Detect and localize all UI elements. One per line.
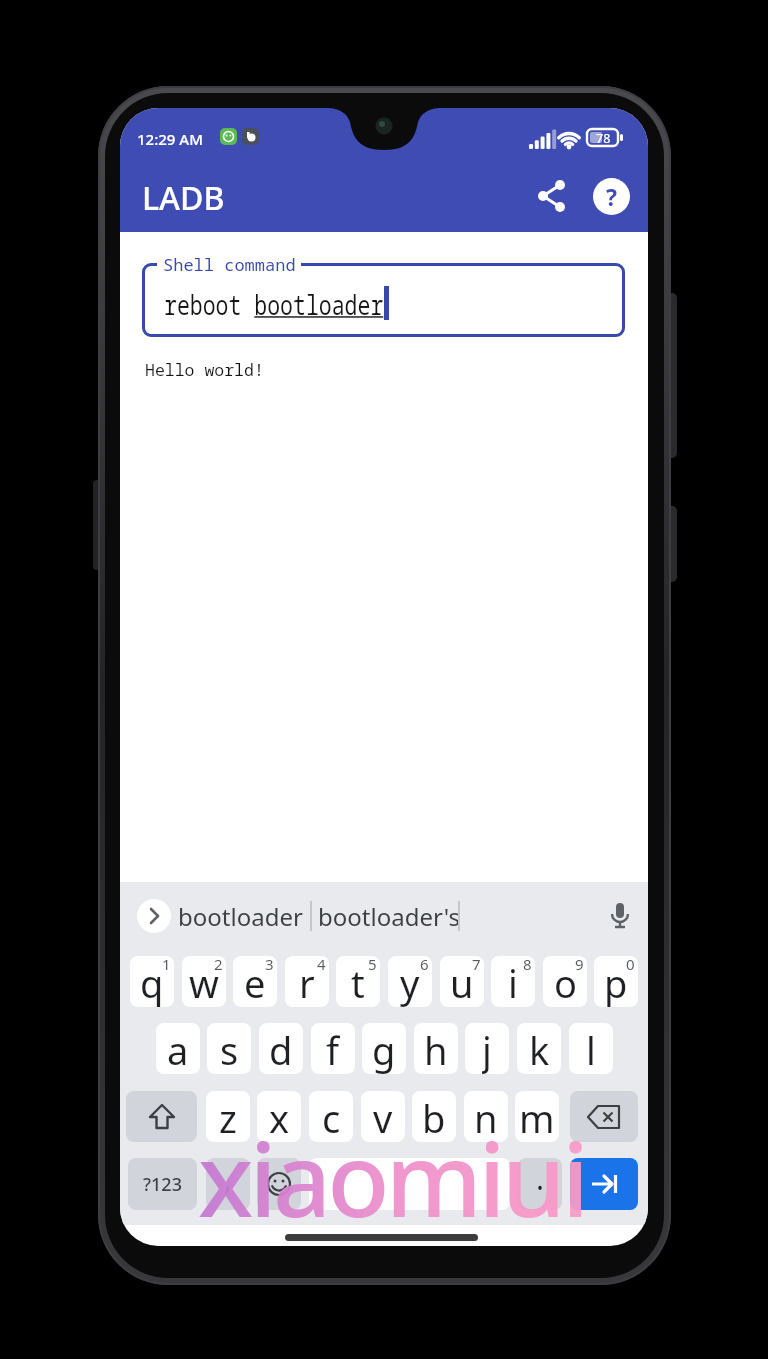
staticText: s (220, 1024, 239, 1074)
button[interactable]: b (412, 1091, 456, 1142)
staticText: m (519, 1092, 555, 1142)
staticText: 0 (626, 956, 635, 974)
button[interactable]: n (464, 1091, 508, 1142)
button[interactable] (532, 176, 572, 216)
staticText: a (167, 1024, 189, 1074)
staticText: i (508, 957, 518, 1007)
staticText: 3 (265, 956, 274, 974)
staticText: Shell command (163, 253, 296, 276)
staticText: ? (606, 181, 617, 212)
staticText: 9 (575, 956, 584, 974)
staticText: 78 (596, 130, 611, 147)
staticText: 6 (420, 956, 429, 974)
button[interactable]: x (257, 1091, 301, 1142)
staticText: z (219, 1092, 237, 1142)
staticText: 5 (368, 956, 377, 974)
staticText: u (450, 957, 474, 1007)
button[interactable]: v (361, 1091, 405, 1142)
staticText: 2 (214, 956, 223, 974)
button[interactable]: m (515, 1091, 559, 1142)
staticText: d (269, 1024, 293, 1074)
button[interactable]: u (440, 956, 484, 1007)
staticText: LADB (142, 176, 225, 220)
button[interactable]: p (594, 956, 638, 1007)
staticText: r (299, 957, 315, 1007)
button[interactable]: k (517, 1023, 561, 1074)
button[interactable] (257, 1158, 301, 1210)
staticText: 8 (523, 956, 532, 974)
button[interactable]: w (182, 956, 226, 1007)
staticText: 7 (472, 956, 481, 974)
button[interactable] (570, 1091, 638, 1142)
button[interactable]: y (388, 956, 432, 1007)
button[interactable]: i (491, 956, 535, 1007)
button[interactable] (602, 898, 638, 934)
button[interactable]: c (309, 1091, 353, 1142)
button[interactable]: j (465, 1023, 509, 1074)
staticText: v (373, 1092, 393, 1142)
button[interactable]: f (311, 1023, 355, 1074)
button[interactable]: t (336, 956, 380, 1007)
button[interactable]: e (233, 956, 277, 1007)
button[interactable]: s (207, 1023, 251, 1074)
button[interactable]: o (543, 956, 587, 1007)
button[interactable] (137, 899, 171, 933)
staticText: xiaomiui (198, 1108, 586, 1246)
staticText: c (322, 1092, 341, 1142)
staticText: l (586, 1024, 596, 1074)
staticText: w (189, 957, 219, 1007)
staticText: f (326, 1024, 340, 1074)
button[interactable]: ?123 (128, 1158, 197, 1210)
button[interactable]: ? (593, 178, 630, 215)
staticText: 1 (162, 956, 171, 974)
button[interactable]: z (206, 1091, 250, 1142)
button[interactable]: l (569, 1023, 613, 1074)
button[interactable]: a (156, 1023, 200, 1074)
button[interactable]: bootloader's (318, 900, 460, 932)
button[interactable]: bootloader (178, 900, 303, 932)
staticText: q (140, 957, 164, 1007)
button[interactable] (126, 1091, 197, 1142)
staticText: , (224, 1158, 233, 1199)
staticText: 12:29 AM (137, 129, 203, 149)
button[interactable]: q (130, 956, 174, 1007)
staticText: bootloader (178, 900, 303, 932)
staticText: ?123 (143, 1172, 182, 1197)
staticText: k (529, 1024, 550, 1074)
staticText: g (372, 1024, 396, 1074)
staticText: n (474, 1092, 498, 1142)
staticText: . (536, 1158, 545, 1199)
staticText: t (351, 957, 365, 1007)
staticText: j (482, 1024, 492, 1074)
button[interactable]: d (259, 1023, 303, 1074)
button[interactable] (309, 1158, 510, 1210)
staticText: 4 (317, 956, 326, 974)
staticText: e (244, 957, 266, 1007)
button[interactable]: g (362, 1023, 406, 1074)
button[interactable]: h (414, 1023, 458, 1074)
staticText: bootloader's (318, 900, 460, 932)
staticText: y (400, 957, 420, 1007)
staticText: reboot bootloader (164, 285, 384, 322)
staticText: x (269, 1092, 290, 1142)
button[interactable]: . (518, 1158, 562, 1210)
staticText: p (604, 957, 628, 1007)
staticText: Hello world! (145, 358, 264, 380)
staticText: b (422, 1092, 446, 1142)
button[interactable] (570, 1158, 638, 1210)
staticText: h (424, 1024, 448, 1074)
button[interactable]: , (206, 1158, 250, 1210)
button[interactable]: r (285, 956, 329, 1007)
staticText: o (554, 957, 577, 1007)
